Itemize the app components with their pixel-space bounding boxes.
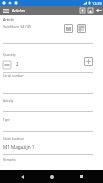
staticText: Article <box>3 17 15 22</box>
staticText: Stock Location <box>3 137 25 141</box>
staticText: Serial number <box>3 74 24 78</box>
staticText: Quantity <box>3 53 16 57</box>
staticText: Type <box>3 118 10 122</box>
button[interactable]: Back <box>94 6 103 15</box>
staticText: Articles <box>12 8 26 13</box>
button[interactable]: Back <box>15 170 29 183</box>
staticText: 2 <box>16 61 19 67</box>
button[interactable]: Home <box>45 170 59 183</box>
staticText: Remarks <box>3 158 16 162</box>
staticText: SubStore 54745 <box>3 24 31 29</box>
button[interactable]: Barcode scanner <box>78 6 86 15</box>
button[interactable]: Save <box>86 6 94 15</box>
button[interactable]: Recent apps <box>74 170 88 183</box>
button[interactable]: Move item <box>84 57 93 66</box>
staticText: Activity <box>3 99 14 103</box>
button[interactable]: Scan barcode <box>64 24 73 33</box>
staticText: M1 Magazijn 1 <box>3 144 35 150</box>
button[interactable]: Scan QR code <box>77 24 86 33</box>
staticText: 12:39 <box>92 1 102 6</box>
button[interactable]: Open navigation menu <box>0 6 11 15</box>
